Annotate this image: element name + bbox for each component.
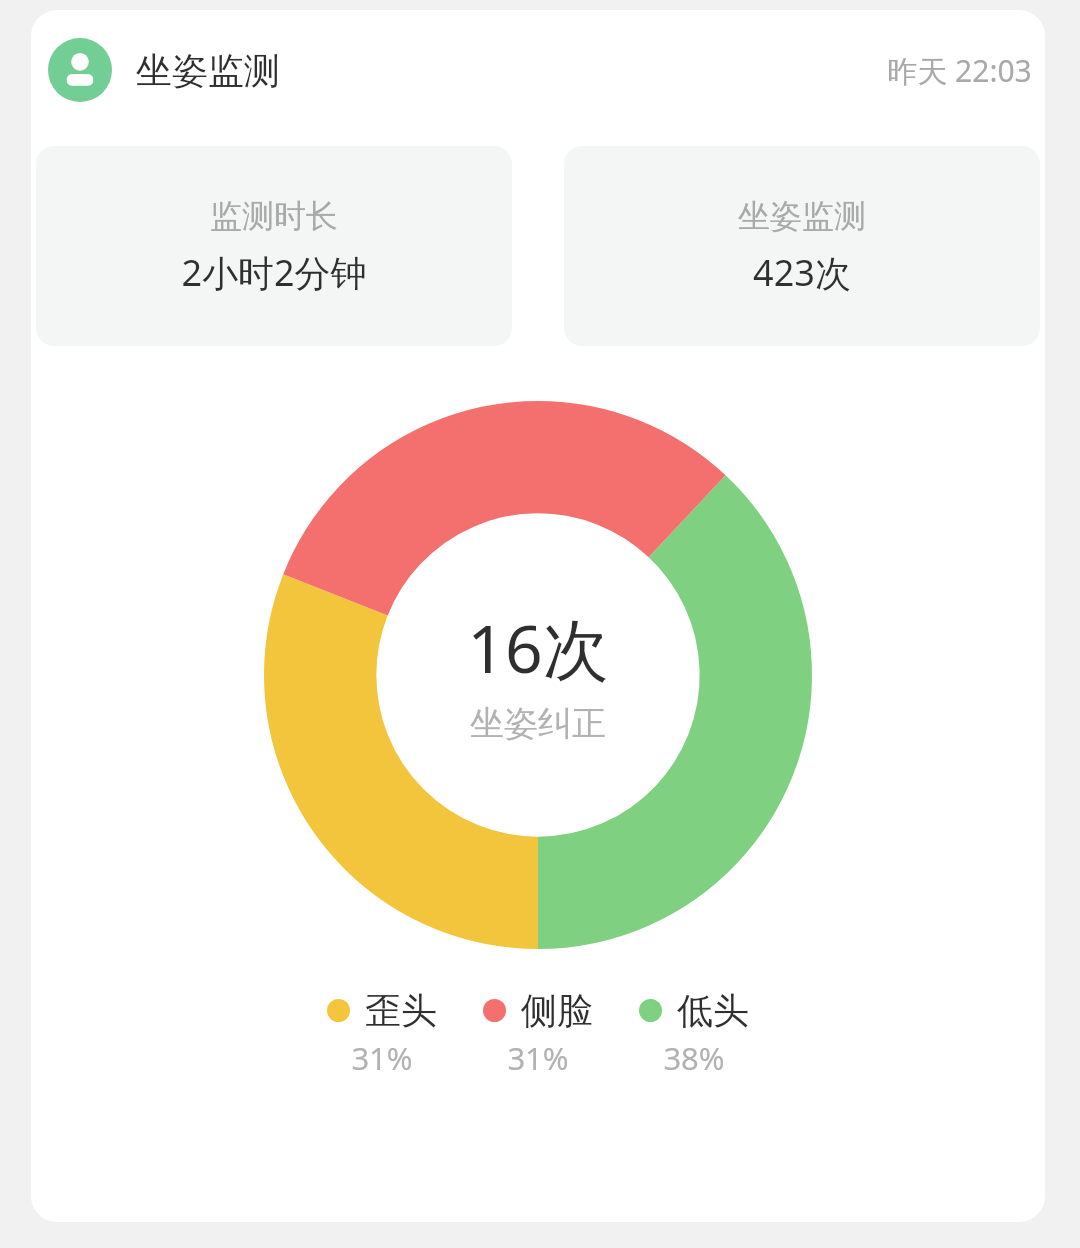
staticText: 侧脸 — [521, 988, 593, 1033]
staticText: 38% — [663, 1037, 725, 1079]
staticText: 16次 — [467, 602, 609, 692]
staticText: 坐姿监测 — [136, 48, 280, 93]
staticText: 低头 — [677, 988, 749, 1033]
button[interactable]: 坐姿监测 — [564, 146, 1040, 346]
other: Profile avatar — [48, 38, 112, 102]
button[interactable]: 侧脸 — [483, 988, 593, 1079]
button[interactable]: Profile avatar — [31, 10, 1045, 102]
staticText: 监测时长 — [210, 196, 338, 236]
button[interactable]: 监测时长 — [36, 146, 512, 346]
button[interactable]: 歪头 — [327, 988, 437, 1079]
staticText: 歪头 — [365, 988, 437, 1033]
staticText: 坐姿监测 — [738, 196, 866, 236]
staticText: 31% — [507, 1037, 569, 1079]
staticText: 坐姿纠正 — [470, 702, 606, 745]
button[interactable]: 低头 — [639, 988, 749, 1079]
staticText: 31% — [351, 1037, 413, 1079]
staticText: 2小时2分钟 — [181, 248, 367, 297]
staticText: 昨天 22:03 — [887, 50, 1032, 91]
staticText: 423次 — [753, 248, 851, 297]
